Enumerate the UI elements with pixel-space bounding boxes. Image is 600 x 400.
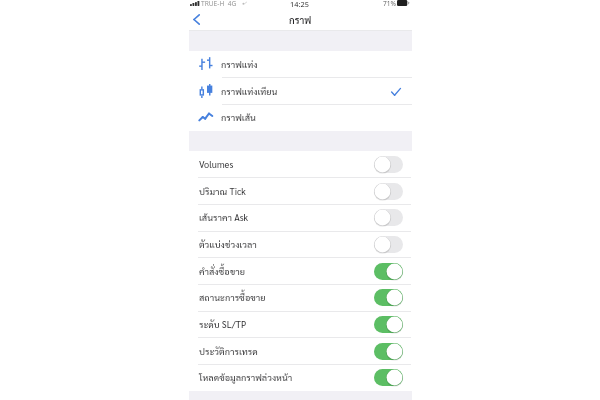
button[interactable]: เส้นราคา Ask [189,204,412,231]
button[interactable]: กราฟแท่ง [189,51,412,78]
button[interactable]: Back [187,10,205,28]
staticText: ตัวแบ่งช่วงเวลา [199,238,257,250]
button[interactable]: ปริมาณ Tick [189,178,412,205]
button[interactable]: คำสั่งซื้อขาย [189,258,412,285]
button[interactable]: สถานะการซื้อขาย [189,284,412,311]
staticText: สถานะการซื้อขาย [199,291,266,303]
staticText: TRUE-H 4G [201,0,237,8]
staticText: กราฟ [289,14,312,26]
staticText: ระดับ SL/TP [199,318,247,330]
staticText: 71% [383,0,397,8]
staticText: คำสั่งซื้อขาย [199,265,245,277]
staticText: 14:25 [290,0,309,9]
button[interactable]: โหลดข้อมูลกราฟล่วงหน้า [189,364,412,391]
staticText: ประวัติการเทรด [199,345,258,357]
staticText: Volumes [199,158,234,170]
button[interactable]: ระดับ SL/TP [189,311,412,338]
staticText: กราฟเส้น [221,111,256,123]
button[interactable]: ประวัติการเทรด [189,338,412,365]
button[interactable]: กราฟแท่งเทียน [189,78,412,105]
staticText: กราฟแท่งเทียน [221,85,278,97]
button[interactable]: กราฟเส้น [189,104,412,131]
staticText: โหลดข้อมูลกราฟล่วงหน้า [199,371,293,383]
staticText: ปริมาณ Tick [199,185,246,197]
staticText: เส้นราคา Ask [199,211,249,223]
staticText: กราฟแท่ง [221,58,258,70]
button[interactable]: Volumes [189,151,412,178]
button[interactable]: ตัวแบ่งช่วงเวลา [189,231,412,258]
